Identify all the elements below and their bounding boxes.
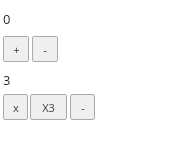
staticText: 0 <box>3 10 11 28</box>
button[interactable]: x <box>3 94 28 120</box>
button[interactable]: X3 <box>30 94 67 120</box>
button[interactable]: + <box>3 36 29 62</box>
staticText: + <box>13 42 20 57</box>
staticText: 3 <box>3 71 11 88</box>
staticText: - <box>43 42 47 57</box>
button[interactable]: - <box>32 36 58 62</box>
button[interactable]: - <box>70 94 95 120</box>
staticText: - <box>81 100 85 115</box>
staticText: x <box>13 100 19 115</box>
staticText: X3 <box>42 100 55 115</box>
